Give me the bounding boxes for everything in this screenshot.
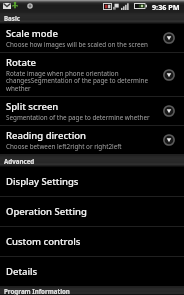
button[interactable]: Display Settings [0,167,184,196]
other: Open options [163,32,175,44]
other: Open options [163,105,175,117]
staticText: Scale mode [6,27,58,40]
staticText: Advanced [4,157,35,165]
staticText: Basic [4,14,20,22]
staticText: Rotate [6,56,36,69]
staticText: Choose how images will be scaled on the … [6,40,148,49]
other: Open options [163,69,175,81]
staticText: Reading direction [6,129,87,142]
staticText: Details [6,265,38,278]
staticText: Rotate image when phone orientation chan… [6,69,160,93]
other: Open options [163,134,175,146]
staticText: Display Settings [6,175,79,188]
staticText: Split screen [6,100,59,113]
button[interactable]: Operation Setting [0,197,184,226]
button[interactable]: Reading direction [0,126,184,154]
button[interactable]: Scale mode [0,24,184,52]
button[interactable]: Custom controls [0,227,184,256]
staticText: Operation Setting [6,205,87,218]
staticText: Program Information [4,287,70,295]
staticText: Choose between left2right or right2left [6,142,122,151]
staticText: 9:36 PM [152,2,180,12]
button[interactable]: Details [0,257,184,286]
button[interactable]: Split screen [0,97,184,125]
staticText: Custom controls [6,235,81,248]
staticText: Segmentation of the page to determine wh… [6,113,150,122]
button[interactable]: Rotate [0,53,184,96]
